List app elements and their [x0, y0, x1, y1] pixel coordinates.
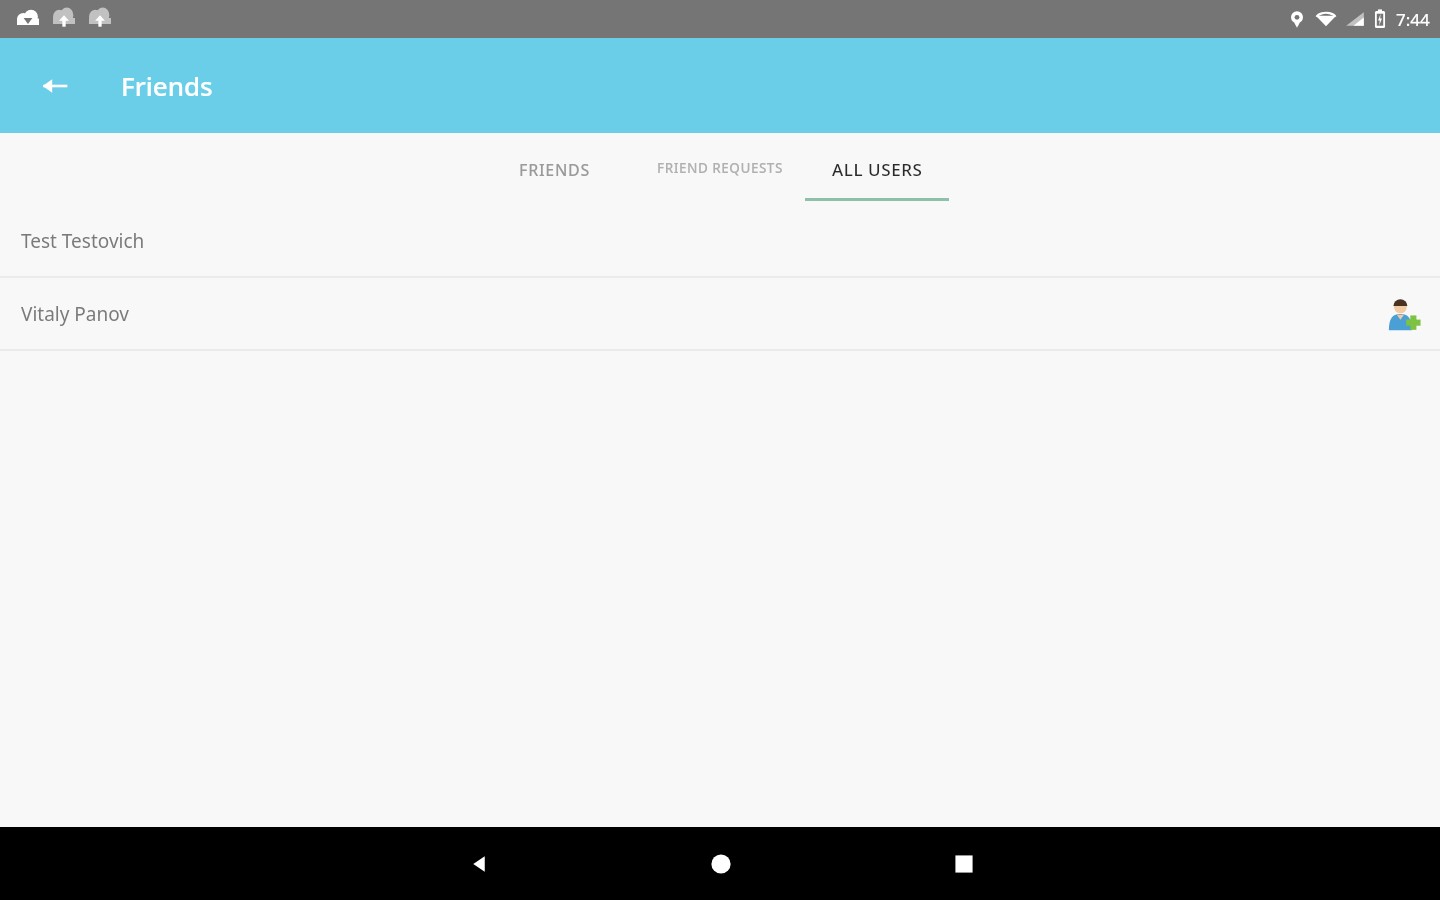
button[interactable]: Vitaly Panov: [0, 278, 1440, 349]
button[interactable]: Test Testovich: [0, 205, 1440, 276]
button[interactable]: Add friend: [1380, 290, 1428, 338]
staticText: 7:44: [1396, 8, 1430, 31]
staticText: FRIENDS: [519, 159, 590, 181]
staticText: FRIEND REQUESTS: [657, 159, 783, 177]
button[interactable]: FRIEND REQUESTS: [636, 133, 804, 205]
button[interactable]: ALL USERS: [804, 133, 950, 205]
button[interactable]: Back: [30, 61, 80, 111]
button[interactable]: FRIENDS: [472, 133, 636, 205]
button[interactable]: Back: [443, 828, 515, 900]
button[interactable]: Home: [685, 828, 757, 900]
button[interactable]: Recent apps: [928, 828, 1000, 900]
staticText: Vitaly Panov: [21, 301, 130, 327]
staticText: Friends: [121, 68, 213, 103]
staticText: Test Testovich: [21, 228, 145, 254]
staticText: ALL USERS: [832, 158, 923, 181]
